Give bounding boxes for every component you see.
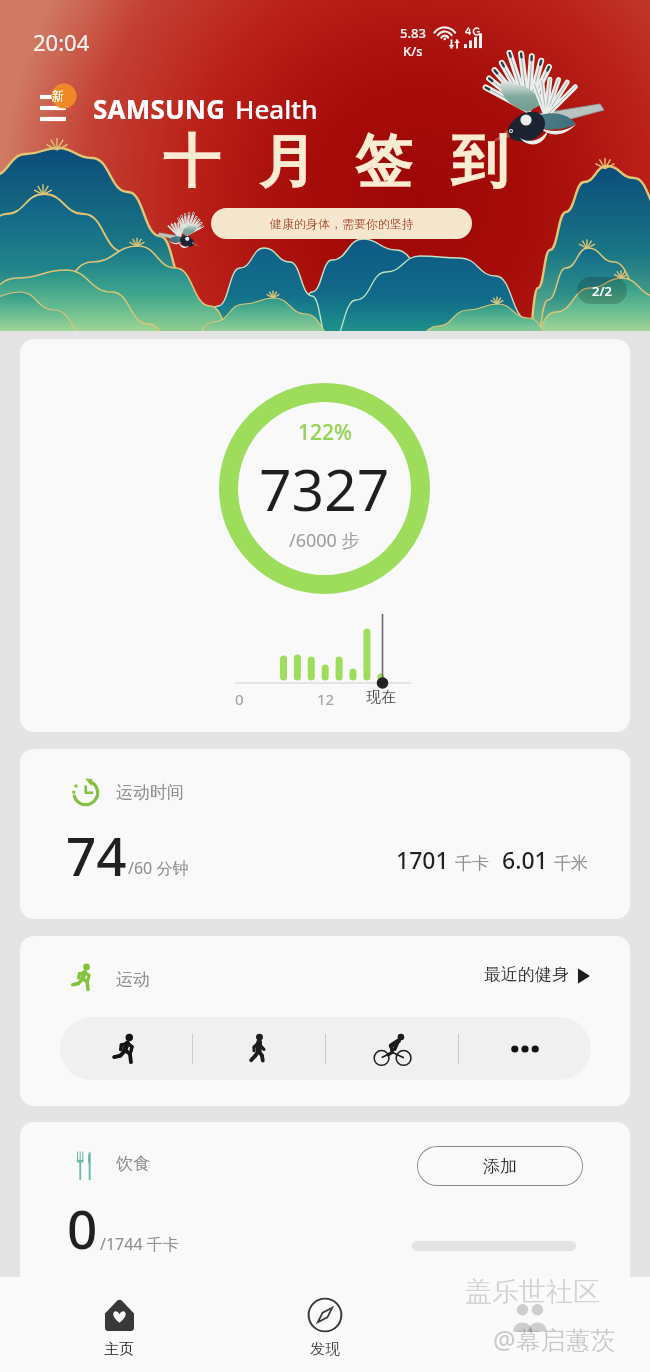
staticText: 月 <box>259 126 316 198</box>
staticText: 主页 <box>104 1340 134 1359</box>
button[interactable]: Running <box>60 1017 192 1080</box>
staticText: /1744 千卡 <box>100 1233 179 1255</box>
staticText: 74 <box>66 819 127 891</box>
button[interactable]: 最近的健身 <box>484 964 590 985</box>
button[interactable]: 健康的身体，需要你的坚持 <box>211 208 472 239</box>
staticText: @幕启蕙茨 <box>493 1322 616 1356</box>
staticText: 运动时间 <box>116 782 184 803</box>
button[interactable]: Cycling <box>326 1017 458 1080</box>
button[interactable]: 运动时间 <box>20 749 630 919</box>
button[interactable]: 2/2 <box>577 277 627 304</box>
staticText: 到 <box>451 126 508 198</box>
staticText: 0 <box>235 689 244 709</box>
staticText: 发现 <box>310 1340 340 1359</box>
button[interactable]: 添加 <box>417 1146 583 1186</box>
button[interactable]: Walking <box>193 1017 325 1080</box>
staticText: 十 <box>163 126 220 198</box>
button[interactable]: More exercises <box>459 1017 591 1080</box>
staticText: 12 <box>317 689 335 709</box>
staticText: 饮食 <box>116 1153 150 1174</box>
staticText: 新 <box>52 88 64 103</box>
staticText: 千米 <box>554 853 588 874</box>
staticText: /6000 步 <box>289 528 360 553</box>
staticText: 0 <box>67 1192 98 1264</box>
button[interactable]: Menu <box>38 86 80 126</box>
staticText: 现在 <box>366 688 396 707</box>
staticText: 2/2 <box>592 282 612 300</box>
button[interactable]: 饮食 <box>20 1122 630 1292</box>
staticText: Health <box>235 91 318 126</box>
staticText: 20:04 <box>33 27 90 57</box>
button[interactable]: 发现 <box>276 1297 374 1359</box>
staticText: 5.83 <box>400 24 426 42</box>
staticText: 122% <box>298 418 352 447</box>
button[interactable]: 主页 <box>70 1299 168 1359</box>
staticText: 健康的身体，需要你的坚持 <box>270 216 414 231</box>
staticText: 运动 <box>116 969 150 990</box>
staticText: 添加 <box>483 1156 517 1177</box>
staticText: SAMSUNG <box>93 91 226 126</box>
button[interactable]: 运动 <box>20 936 630 1106</box>
staticText: 7327 <box>259 450 390 528</box>
staticText: 1701 <box>396 844 449 875</box>
staticText: K/s <box>403 42 423 60</box>
staticText: 千卡 <box>455 853 489 874</box>
staticText: 盖乐世社区 <box>465 1275 600 1309</box>
staticText: 6.01 <box>502 844 548 875</box>
staticText: 签 <box>355 126 412 198</box>
staticText: 最近的健身 <box>484 964 569 985</box>
button[interactable]: 122% <box>20 339 630 732</box>
staticText: /60 分钟 <box>128 857 189 879</box>
